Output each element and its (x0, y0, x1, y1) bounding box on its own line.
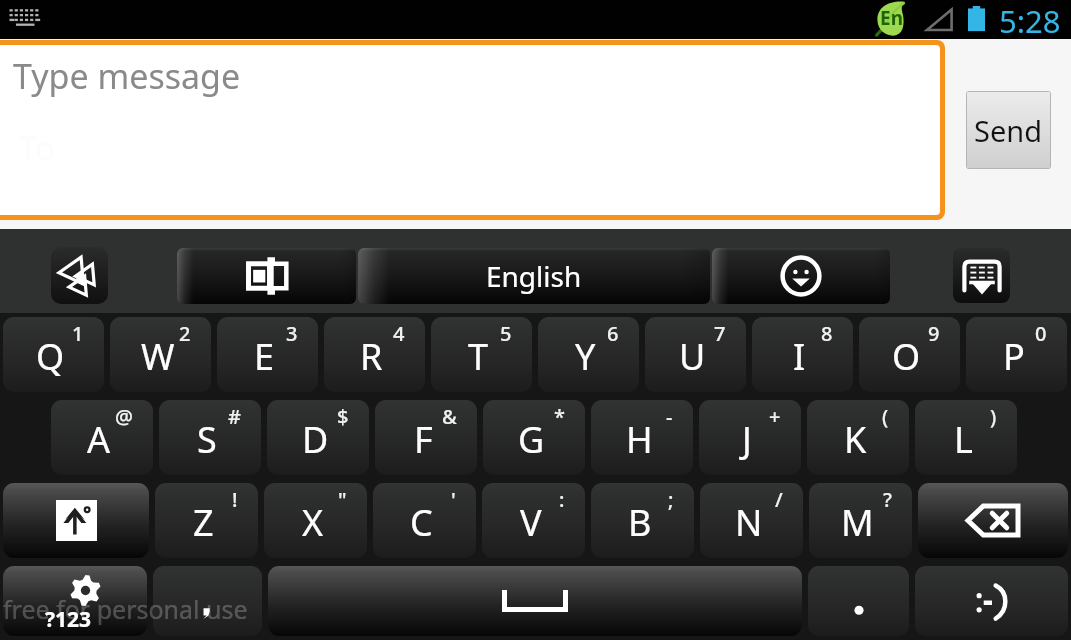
staticText: J (742, 415, 752, 464)
button[interactable]: H (591, 400, 693, 475)
staticText: ) (990, 403, 997, 430)
staticText: * (554, 403, 565, 430)
staticText: 7 (714, 320, 726, 347)
staticText: 1 (72, 320, 84, 347)
button[interactable]: U (645, 317, 746, 392)
button[interactable]: T (431, 317, 532, 392)
staticText: B (628, 498, 652, 547)
staticText: T (468, 332, 489, 381)
button[interactable]: E (217, 317, 318, 392)
staticText: Q (36, 332, 65, 381)
staticText: H (626, 415, 653, 464)
button[interactable]: Q (3, 317, 104, 392)
button[interactable]: Symbols and settings (3, 566, 147, 636)
button[interactable]: Hide keyboard (953, 248, 1010, 303)
staticText: Send (974, 111, 1043, 150)
staticText: : (559, 486, 565, 513)
staticText: V (520, 498, 542, 547)
button[interactable]: Send (967, 92, 1050, 168)
button[interactable]: F (375, 400, 477, 475)
button[interactable]: D (267, 400, 369, 475)
staticText: ( (882, 403, 889, 430)
staticText: En (880, 5, 903, 31)
staticText: D (302, 415, 329, 464)
staticText: ?123 (45, 605, 92, 634)
staticText: A (87, 415, 111, 464)
button[interactable]: G (483, 400, 585, 475)
button[interactable]: Smiley (915, 566, 1068, 636)
staticText: / (775, 486, 783, 513)
button[interactable]: L (915, 400, 1017, 475)
button[interactable]: Period (808, 566, 909, 636)
button[interactable]: M (809, 483, 912, 558)
staticText: $ (337, 403, 349, 430)
button[interactable]: A (51, 400, 153, 475)
staticText: 6 (607, 320, 619, 347)
button[interactable]: J (699, 400, 801, 475)
button[interactable]: N (700, 483, 803, 558)
staticText: 0 (1035, 320, 1047, 347)
staticText: English (486, 257, 582, 295)
button[interactable]: R (324, 317, 425, 392)
staticText: N (735, 498, 763, 547)
staticText: + (769, 403, 781, 430)
staticText: X (302, 498, 324, 547)
staticText: L (954, 415, 973, 464)
button[interactable]: X (264, 483, 367, 558)
staticText: 9 (928, 320, 940, 347)
button[interactable]: V (482, 483, 585, 558)
staticText: ' (451, 486, 456, 513)
button[interactable]: Space (268, 566, 802, 636)
staticText: 2 (179, 320, 191, 347)
staticText: 4 (393, 320, 405, 347)
staticText: 5:28 (999, 0, 1061, 39)
staticText: F (414, 415, 433, 464)
staticText: I (793, 332, 806, 381)
button[interactable]: K (807, 400, 909, 475)
staticText: E (254, 332, 275, 381)
staticText: C (410, 498, 433, 547)
staticText: R (360, 332, 383, 381)
staticText: # (228, 403, 241, 430)
staticText: W (141, 332, 175, 381)
staticText: @ (115, 403, 133, 430)
staticText: 8 (821, 320, 833, 347)
button[interactable]: Z (155, 483, 258, 558)
button[interactable]: Type message (0, 45, 940, 215)
staticText: S (197, 415, 217, 464)
staticText: & (442, 403, 457, 430)
staticText: - (666, 403, 673, 430)
staticText: ; (668, 486, 674, 513)
staticText: " (338, 486, 347, 513)
staticText: U (679, 332, 706, 381)
button[interactable]: Shift (3, 483, 149, 558)
button[interactable]: Layout (177, 248, 356, 304)
button[interactable]: I (752, 317, 853, 392)
staticText: Y (575, 332, 596, 381)
staticText: ! (232, 486, 238, 513)
staticText: 3 (286, 320, 298, 347)
staticText: M (841, 498, 874, 547)
staticText: O (892, 332, 921, 381)
button[interactable]: Comma (153, 566, 262, 636)
button[interactable]: C (373, 483, 476, 558)
staticText: ? (883, 486, 892, 513)
staticText: P (1003, 332, 1025, 381)
button[interactable]: S (159, 400, 261, 475)
button[interactable]: Y (538, 317, 639, 392)
button[interactable]: B (591, 483, 694, 558)
button[interactable]: Backspace (918, 483, 1068, 558)
staticText: Z (193, 498, 214, 547)
button[interactable]: O (859, 317, 960, 392)
button[interactable]: English (358, 248, 710, 304)
staticText: K (844, 415, 867, 464)
button[interactable]: Emoji (712, 248, 890, 304)
staticText: G (518, 415, 545, 464)
staticText: free for personal use (3, 592, 248, 626)
button[interactable]: P (966, 317, 1067, 392)
staticText: Type message (13, 53, 241, 99)
staticText: 5 (500, 320, 512, 347)
button[interactable]: W (110, 317, 211, 392)
button[interactable]: Voice input (51, 247, 108, 304)
